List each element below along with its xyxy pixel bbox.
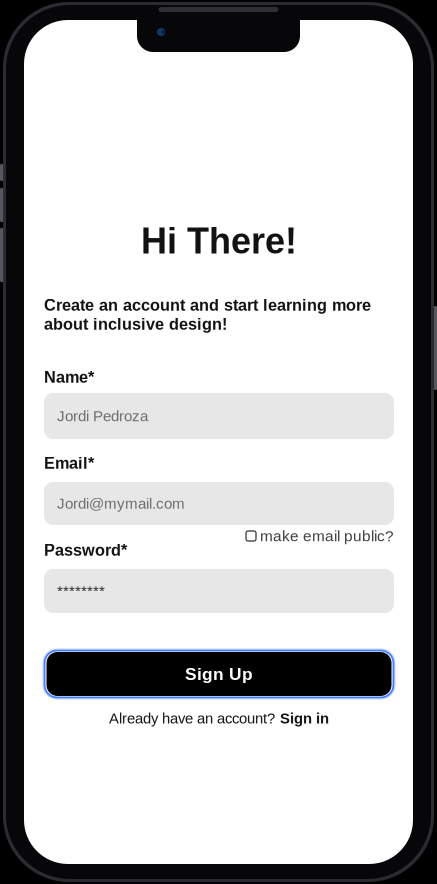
- button[interactable]: make email public?: [246, 529, 394, 543]
- button[interactable]: Sign in: [275, 710, 329, 726]
- staticText: Jordi Pedroza: [57, 408, 148, 424]
- staticText: Email*: [44, 454, 94, 472]
- staticText: Create an account and start learning mor…: [44, 296, 371, 314]
- staticText: Hi There!: [141, 221, 297, 261]
- button[interactable]: Sign Up: [44, 649, 394, 699]
- staticText: Jordi@mymail.com: [57, 495, 185, 512]
- staticText: ********: [57, 583, 105, 599]
- staticText: make email public?: [260, 527, 394, 544]
- staticText: Name*: [44, 368, 94, 386]
- staticText: Already have an account?: [109, 710, 275, 726]
- staticText: about inclusive design!: [44, 315, 227, 333]
- staticText: Sign in: [280, 710, 329, 726]
- staticText: Sign Up: [185, 664, 253, 684]
- staticText: Password*: [44, 541, 127, 559]
